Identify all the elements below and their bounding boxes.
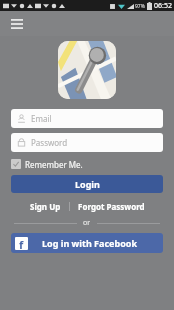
button[interactable]: f	[11, 233, 163, 253]
button[interactable]: Forgot Password	[70, 199, 153, 214]
staticText: Remember Me.	[25, 159, 83, 170]
staticText: or	[83, 218, 91, 228]
button[interactable]: Open navigation menu	[7, 14, 27, 34]
staticText: Password	[31, 137, 68, 148]
button[interactable]: Login	[11, 175, 163, 193]
button[interactable]: Remember Me.	[11, 157, 163, 171]
staticText: f	[19, 237, 24, 250]
staticText: Email	[31, 113, 52, 124]
staticText: Forgot Password	[78, 201, 145, 212]
staticText: Log in with Facebook	[42, 237, 137, 249]
staticText: Login	[75, 178, 100, 190]
button[interactable]: Sign Up	[22, 199, 69, 214]
staticText: 06:52	[154, 1, 172, 11]
button[interactable]: Email	[11, 109, 163, 128]
staticText: 97%	[135, 3, 145, 10]
staticText: Sign Up	[30, 201, 61, 212]
button[interactable]: Password	[11, 133, 163, 152]
